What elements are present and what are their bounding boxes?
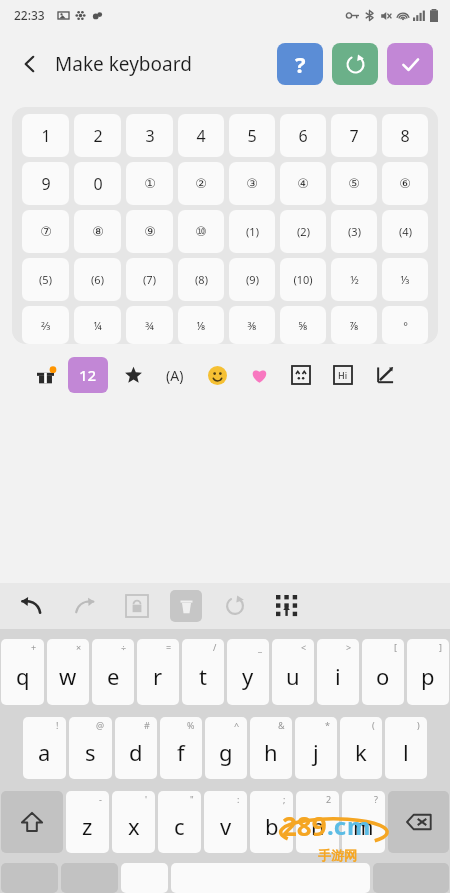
button[interactable]: ⅔ (22, 306, 69, 344)
button[interactable]: ⅓ (382, 258, 428, 301)
button[interactable]: 12 (68, 357, 108, 393)
button[interactable]: Shift (1, 791, 63, 853)
button[interactable]: Draw (371, 361, 399, 389)
button[interactable]: Redo (68, 589, 102, 623)
button[interactable]: ⅜ (229, 306, 275, 344)
button[interactable]: ¼ (74, 306, 121, 344)
staticText: ⑩ (195, 224, 207, 239)
button[interactable]: ? (342, 791, 385, 853)
button[interactable]: Undo (14, 589, 48, 623)
button[interactable]: 0 (74, 162, 121, 205)
button[interactable]: Back (10, 44, 50, 84)
button[interactable]: ] (407, 639, 449, 705)
button[interactable]: ° (382, 306, 428, 344)
button[interactable]: Favorites (119, 361, 147, 389)
button[interactable]: (4) (382, 210, 428, 253)
button[interactable]: (9) (229, 258, 275, 301)
button[interactable]: (1) (229, 210, 275, 253)
button[interactable]: Lock (120, 589, 154, 623)
button[interactable]: [ (362, 639, 404, 705)
staticText: # (144, 719, 150, 731)
button[interactable]: ① (126, 162, 173, 205)
button[interactable]: ¾ (126, 306, 173, 344)
button[interactable]: ⅞ (331, 306, 377, 344)
button[interactable]: (10) (280, 258, 326, 301)
button[interactable]: 4 (178, 114, 224, 157)
button[interactable]: 6 (280, 114, 326, 157)
staticText: m (347, 809, 371, 842)
staticText: _ (258, 641, 262, 653)
button[interactable]: ④ (280, 162, 326, 205)
staticText: + (31, 641, 37, 653)
button[interactable]: Keys (270, 589, 304, 623)
staticText: ⑨ (144, 224, 156, 239)
button[interactable]: > (317, 639, 359, 705)
button[interactable]: ÷ (92, 639, 134, 705)
button[interactable]: × (47, 639, 89, 705)
button[interactable]: ⅛ (178, 306, 224, 344)
button[interactable]: ⅝ (280, 306, 326, 344)
button[interactable]: + (1, 639, 44, 705)
button[interactable]: Help (277, 43, 323, 85)
button[interactable]: 5 (229, 114, 275, 157)
button[interactable]: * (295, 717, 337, 779)
button[interactable]: ⑨ (126, 210, 173, 253)
button[interactable]: @ (69, 717, 112, 779)
button[interactable]: ^ (205, 717, 247, 779)
button[interactable]: (2) (280, 210, 326, 253)
button[interactable]: ( (340, 717, 382, 779)
staticText: (5) (39, 272, 52, 287)
button[interactable]: 3 (126, 114, 173, 157)
button[interactable]: / (182, 639, 224, 705)
button[interactable]: (7) (126, 258, 173, 301)
button[interactable]: Text (329, 361, 357, 389)
button[interactable]: - (66, 791, 109, 853)
button[interactable]: ; (250, 791, 293, 853)
button[interactable]: 7 (331, 114, 377, 157)
button[interactable]: ½ (331, 258, 377, 301)
staticText: e (107, 661, 120, 691)
button[interactable] (121, 863, 168, 893)
button[interactable]: ⑩ (178, 210, 224, 253)
button[interactable]: & (250, 717, 292, 779)
button[interactable]: # (115, 717, 157, 779)
button[interactable]: Emoji (203, 361, 231, 389)
button[interactable]: 2 (296, 791, 339, 853)
button[interactable]: Kaomoji (287, 361, 315, 389)
button[interactable]: 8 (382, 114, 428, 157)
button[interactable]: (3) (331, 210, 377, 253)
button[interactable]: % (160, 717, 202, 779)
button[interactable]: 9 (22, 162, 69, 205)
button[interactable]: (5) (22, 258, 69, 301)
button[interactable]: ⑥ (382, 162, 428, 205)
button[interactable]: ⑦ (22, 210, 69, 253)
button[interactable]: Confirm (387, 43, 433, 85)
button[interactable]: ③ (229, 162, 275, 205)
button[interactable]: 2 (74, 114, 121, 157)
button[interactable]: Reset (332, 43, 378, 85)
button[interactable]: Letters (161, 361, 189, 389)
button[interactable]: ! (23, 717, 66, 779)
button[interactable]: New (28, 358, 62, 392)
button[interactable]: _ (227, 639, 269, 705)
button[interactable]: = (137, 639, 179, 705)
button[interactable]: ② (178, 162, 224, 205)
button[interactable]: " (158, 791, 201, 853)
button[interactable]: (8) (178, 258, 224, 301)
button[interactable]: < (272, 639, 314, 705)
button[interactable]: ' (112, 791, 155, 853)
button[interactable]: Refresh (218, 589, 252, 623)
button[interactable]: : (204, 791, 247, 853)
button[interactable]: (6) (74, 258, 121, 301)
button[interactable]: Delete (170, 590, 202, 622)
button[interactable]: ) (385, 717, 427, 779)
button[interactable]: 1 (22, 114, 69, 157)
button[interactable]: ⑧ (74, 210, 121, 253)
button[interactable]: ⑤ (331, 162, 377, 205)
button[interactable]: Hearts (245, 361, 273, 389)
button[interactable]: Backspace (388, 791, 449, 853)
